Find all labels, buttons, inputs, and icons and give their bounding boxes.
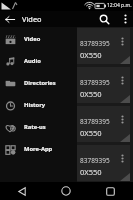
button[interactable]: Back — [0, 11, 19, 27]
staticText: Video — [22, 14, 42, 24]
staticText: 83789395 — [80, 156, 110, 165]
button[interactable]: History — [0, 94, 77, 116]
button[interactable]: Video — [0, 28, 77, 50]
button[interactable]: Recents — [88, 182, 133, 200]
button[interactable]: Home — [44, 182, 88, 200]
staticText: 83789395 — [80, 117, 110, 126]
button[interactable]: Video options — [118, 74, 127, 87]
button[interactable]: 83789395 — [0, 106, 130, 142]
button[interactable]: 83789395 — [0, 145, 130, 181]
staticText: Audio — [24, 57, 41, 65]
button[interactable]: Video options — [118, 35, 127, 48]
staticText: 0X550 — [80, 167, 102, 177]
button[interactable]: Search — [96, 11, 113, 27]
staticText: Directories — [24, 79, 56, 87]
button[interactable]: Audio — [0, 50, 77, 72]
staticText: 83789395 — [80, 39, 110, 48]
staticText: Video — [24, 35, 41, 43]
staticText: More-App — [24, 145, 53, 153]
staticText: Rate-us — [24, 123, 46, 131]
button[interactable]: 83789395 — [0, 28, 130, 64]
staticText: 83789395 — [80, 78, 110, 87]
button[interactable]: More options — [119, 11, 132, 27]
staticText: 0X550 — [80, 128, 102, 138]
staticText: 12:04 p.m. — [107, 2, 132, 9]
button[interactable]: Video options — [118, 113, 127, 126]
button[interactable]: Back — [0, 182, 44, 200]
button[interactable]: Directories — [0, 72, 77, 94]
button[interactable]: More-App — [0, 138, 77, 160]
staticText: 0X550 — [80, 89, 102, 99]
staticText: History — [24, 101, 46, 109]
button[interactable]: Video options — [118, 152, 127, 165]
button[interactable]: 83789395 — [0, 67, 130, 103]
button[interactable]: Rate-us — [0, 116, 77, 138]
staticText: 0X550 — [80, 50, 102, 60]
